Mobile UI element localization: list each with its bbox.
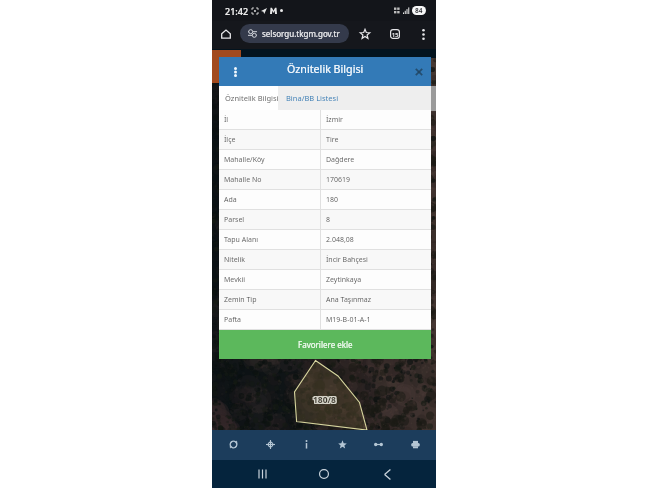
button[interactable]: İl <box>219 110 431 130</box>
staticText: İncir Bahçesi <box>326 255 368 265</box>
staticText: Nitelik <box>224 255 245 265</box>
staticText: 180/8 <box>314 395 337 407</box>
staticText: Pafta <box>224 315 242 325</box>
staticText: Öznitelik Bilgisi <box>225 93 278 103</box>
button[interactable]: Mevkii <box>219 270 431 290</box>
button[interactable]: Bina/BB Listesi <box>278 86 431 110</box>
staticText: 180/8 <box>313 393 336 405</box>
staticText: Parsel <box>224 215 245 225</box>
button[interactable]: Bookmark <box>356 25 374 43</box>
button[interactable]: Ada <box>219 190 431 210</box>
staticText: Zeytinkaya <box>326 275 362 285</box>
staticText: İzmir <box>326 115 343 125</box>
staticText: 180/8 <box>314 394 337 406</box>
button[interactable]: Tapu Alanı <box>219 230 431 250</box>
button[interactable]: Home <box>311 461 337 487</box>
button[interactable]: My location <box>255 430 285 460</box>
staticText: M19-B-01-A-1 <box>326 315 371 325</box>
staticText: İlçe <box>224 135 236 145</box>
staticText: selsorgu.tkgm.gov.tr <box>262 28 340 39</box>
button[interactable]: selsorgu.tkgm.gov.tr <box>240 24 349 43</box>
staticText: Tire <box>326 135 339 145</box>
button[interactable]: Home <box>217 25 235 43</box>
button[interactable]: Menu <box>227 64 243 80</box>
button[interactable]: Refresh <box>218 430 248 460</box>
button[interactable]: İlçe <box>219 130 431 150</box>
staticText: 180/8 <box>312 393 335 405</box>
button[interactable]: Pafta <box>219 310 431 330</box>
staticText: Öznitelik Bilgisi <box>287 62 364 77</box>
staticText: 21:42 <box>225 5 249 17</box>
staticText: 180/8 <box>312 394 335 406</box>
staticText: 8 <box>326 215 331 225</box>
staticText: Favorilere ekle <box>298 339 353 350</box>
button[interactable]: Öznitelik Bilgisi <box>219 86 278 110</box>
button[interactable]: Mahalle/Köy <box>219 150 431 170</box>
button[interactable]: More options <box>414 25 432 43</box>
button[interactable]: Measure <box>363 430 393 460</box>
staticText: Ada <box>224 195 237 205</box>
staticText: 180/8 <box>314 393 337 405</box>
staticText: Mahalle/Köy <box>224 155 265 165</box>
staticText: Zemin Tip <box>224 295 257 305</box>
staticText: İl <box>224 115 229 125</box>
button[interactable]: Zemin Tip <box>219 290 431 310</box>
button[interactable]: Recent apps <box>249 461 275 487</box>
button[interactable]: Print <box>400 430 430 460</box>
staticText: 2.048,08 <box>326 235 354 245</box>
staticText: 180 <box>326 195 339 205</box>
button[interactable]: Favorilere ekle <box>219 330 431 359</box>
button[interactable]: Close <box>411 64 427 80</box>
staticText: Tapu Alanı <box>224 235 259 245</box>
staticText: 170619 <box>326 175 351 185</box>
staticText: 84 <box>415 6 423 15</box>
button[interactable]: Nitelik <box>219 250 431 270</box>
button[interactable]: Tabs <box>386 25 404 43</box>
staticText: Dağdere <box>326 155 355 165</box>
button[interactable]: Parsel <box>219 210 431 230</box>
button[interactable]: Info <box>291 430 321 460</box>
button[interactable]: Mahalle No <box>219 170 431 190</box>
staticText: Ana Taşınmaz <box>326 295 372 305</box>
staticText: Mevkii <box>224 275 246 285</box>
staticText: Mahalle No <box>224 175 262 185</box>
button[interactable]: Favorite <box>327 430 357 460</box>
staticText: Bina/BB Listesi <box>286 93 339 103</box>
staticText: 15 <box>392 31 399 38</box>
staticText: 180/8 <box>313 395 336 407</box>
staticText: 180/8 <box>312 395 335 407</box>
staticText: 180/8 <box>313 394 336 406</box>
button[interactable]: Back <box>374 461 400 487</box>
